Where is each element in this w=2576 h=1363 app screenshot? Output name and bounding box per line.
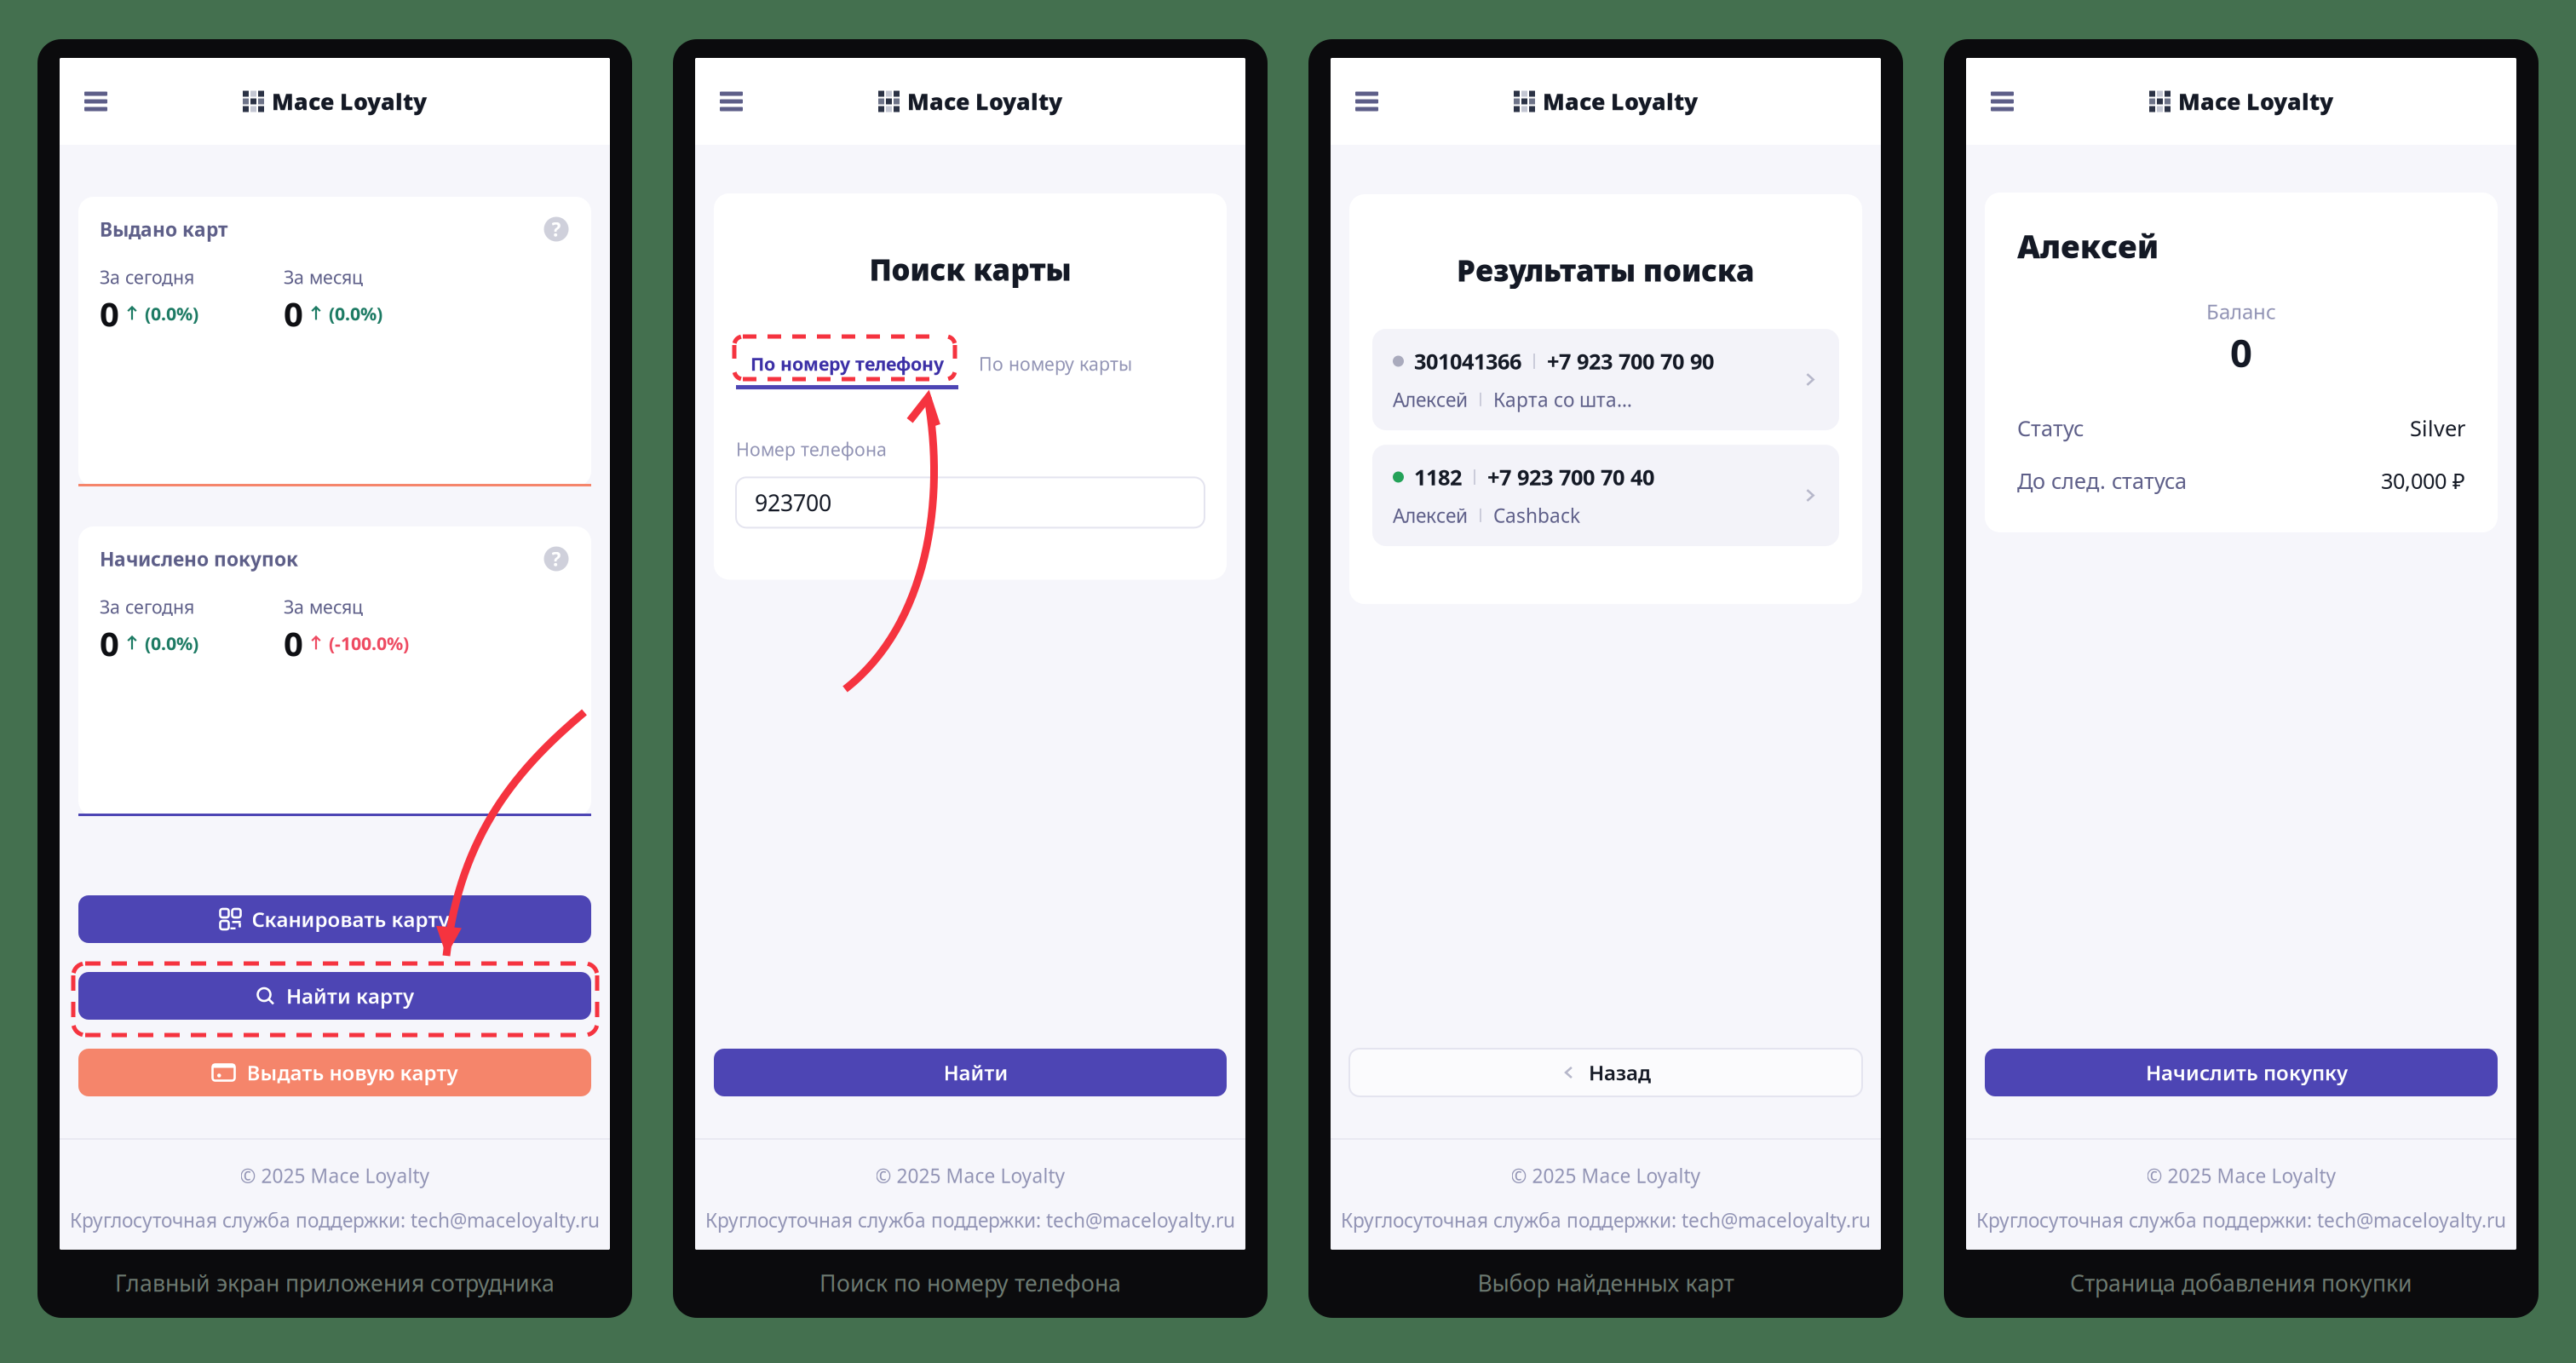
staticText: (0.0%) — [329, 301, 382, 325]
staticText: © 2025 Mace Loyalty — [240, 1163, 430, 1188]
staticText: Алексей — [1393, 387, 1468, 412]
staticText: © 2025 Mace Loyalty — [1511, 1163, 1701, 1188]
staticText: До след. статуса — [2017, 466, 2187, 495]
staticText: Круглосуточная служба поддержки: tech@ma… — [1341, 1207, 1871, 1233]
staticText: +7 923 700 70 40 — [1487, 463, 1654, 491]
staticText: По номеру карты — [979, 352, 1132, 376]
staticText: ? — [552, 546, 561, 572]
staticText: Поиск по номеру телефона — [819, 1268, 1121, 1298]
button[interactable]: Menu — [1343, 78, 1390, 125]
staticText: Круглосуточная служба поддержки: tech@ma… — [705, 1207, 1235, 1233]
staticText: За сегодня — [100, 595, 194, 619]
button[interactable]: Начислить покупку — [1985, 1049, 2498, 1096]
staticText: +7 923 700 70 90 — [1547, 347, 1714, 376]
button[interactable]: 301041366 — [1372, 329, 1839, 430]
button[interactable]: Найти карту — [78, 972, 591, 1020]
staticText: Выбор найденных карт — [1478, 1268, 1734, 1298]
staticText: За месяц — [284, 595, 363, 619]
button[interactable]: Сканировать карту — [78, 895, 591, 943]
staticText: Поиск карты — [869, 250, 1071, 289]
staticText: ? — [552, 216, 561, 242]
staticText: Mace Loyalty — [272, 86, 427, 116]
staticText: Круглосуточная служба поддержки: tech@ma… — [1976, 1207, 2506, 1233]
button[interactable]: Выдать новую карту — [78, 1049, 591, 1096]
staticText: 923700 — [755, 487, 831, 518]
button[interactable]: Menu — [1979, 78, 2026, 125]
staticText: Начислено покупок — [100, 546, 298, 572]
staticText: (-100.0%) — [329, 631, 409, 655]
staticText: За месяц — [284, 265, 363, 289]
button[interactable]: Help — [543, 216, 570, 243]
staticText: 0 — [2230, 327, 2252, 378]
staticText: 301041366 — [1414, 347, 1521, 376]
staticText: 1182 — [1414, 463, 1462, 491]
button[interactable]: 1182 — [1372, 445, 1839, 546]
staticText: 0 — [100, 620, 119, 666]
staticText: Алексей — [1393, 502, 1468, 528]
staticText: Сканировать карту — [252, 906, 449, 933]
staticText: Круглосуточная служба поддержки: tech@ma… — [70, 1207, 600, 1233]
staticText: За сегодня — [100, 265, 194, 289]
staticText: Найти — [943, 1059, 1008, 1086]
staticText: Баланс — [2206, 298, 2276, 325]
staticText: Алексей — [2017, 225, 2159, 267]
staticText: Найти карту — [286, 982, 414, 1009]
staticText: Результаты поиска — [1457, 250, 1755, 290]
button[interactable]: Найти — [714, 1049, 1227, 1096]
staticText: Карта со шта… — [1493, 387, 1632, 412]
staticText: Назад — [1589, 1059, 1651, 1086]
staticText: 0 — [284, 620, 303, 666]
button[interactable]: Menu — [72, 78, 119, 125]
staticText: Cashback — [1493, 502, 1580, 528]
staticText: © 2025 Mace Loyalty — [2146, 1163, 2336, 1188]
staticText: По номеру телефону — [750, 352, 944, 376]
button[interactable]: По номеру телефону — [736, 342, 958, 389]
staticText: (0.0%) — [145, 301, 198, 325]
staticText: Mace Loyalty — [907, 86, 1062, 116]
staticText: Главный экран приложения сотрудника — [115, 1268, 555, 1298]
staticText: Начислить покупку — [2146, 1059, 2348, 1086]
staticText: 0 — [100, 291, 119, 336]
staticText: Mace Loyalty — [2178, 86, 2333, 116]
button[interactable]: Назад — [1349, 1049, 1862, 1096]
staticText: Mace Loyalty — [1543, 86, 1698, 116]
staticText: © 2025 Mace Loyalty — [875, 1163, 1065, 1188]
staticText: Статус — [2017, 414, 2084, 442]
staticText: Выдано карт — [100, 216, 227, 242]
button[interactable]: Menu — [708, 78, 755, 125]
staticText: Страница добавления покупки — [2070, 1268, 2412, 1298]
staticText: (0.0%) — [145, 631, 198, 655]
staticText: 30,000 ₽ — [2381, 466, 2465, 495]
staticText: Silver — [2410, 414, 2465, 442]
staticText: Выдать новую карту — [247, 1059, 458, 1086]
button[interactable]: Help — [543, 545, 570, 572]
staticText: Номер телефона — [736, 437, 887, 461]
button[interactable]: По номеру карты — [958, 342, 1132, 389]
staticText: 0 — [284, 291, 303, 336]
